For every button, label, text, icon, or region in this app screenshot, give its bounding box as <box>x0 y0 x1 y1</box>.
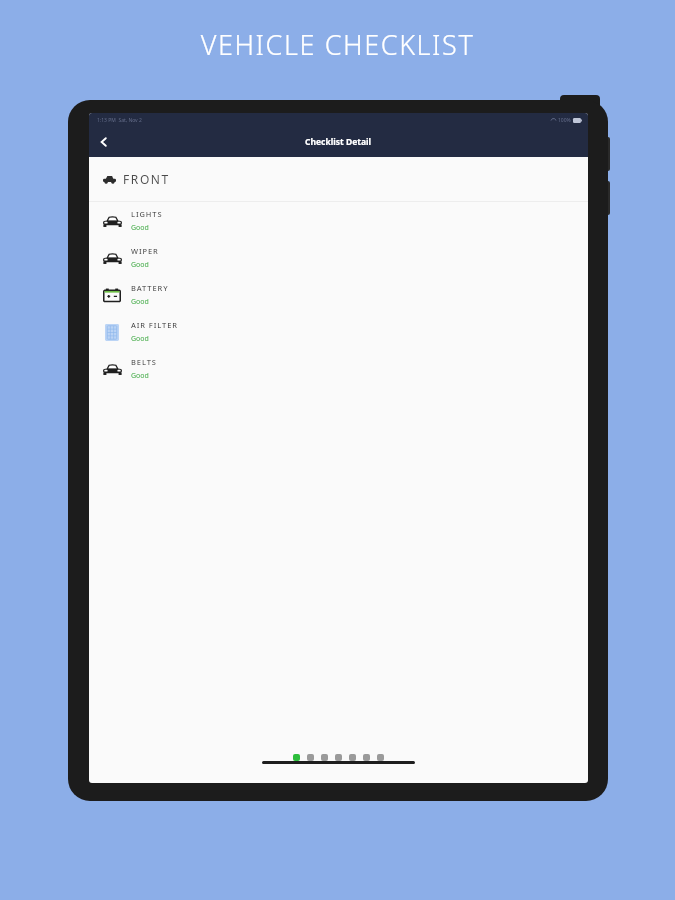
staticText: WIPER <box>131 246 159 256</box>
staticText: Good <box>131 334 149 344</box>
button[interactable]: Page 7 <box>377 754 384 761</box>
staticText: 1:13 PM Sat, Nov 2 <box>97 117 142 124</box>
button[interactable]: Page 2 <box>307 754 314 761</box>
button[interactable]: Page 4 <box>335 754 342 761</box>
staticText: VEHICLE CHECKLIST <box>0 26 675 63</box>
button[interactable]: AIR FILTER <box>89 313 588 350</box>
staticText: LIGHTS <box>131 209 163 219</box>
staticText: Good <box>131 223 149 233</box>
button[interactable]: WIPER <box>89 239 588 276</box>
staticText: BATTERY <box>131 283 169 293</box>
button[interactable]: Page 6 <box>363 754 370 761</box>
staticText: BELTS <box>131 357 157 367</box>
button[interactable]: Page 5 <box>349 754 356 761</box>
button[interactable]: Page 3 <box>321 754 328 761</box>
staticText: Good <box>131 371 149 381</box>
staticText: 100% <box>558 117 571 124</box>
staticText: FRONT <box>123 171 170 187</box>
staticText: Good <box>131 260 149 270</box>
staticText: AIR FILTER <box>131 320 178 330</box>
button[interactable]: Back <box>93 131 115 153</box>
staticText: Good <box>131 297 149 307</box>
button[interactable]: LIGHTS <box>89 202 588 239</box>
button[interactable]: Page 1 <box>293 754 300 761</box>
button[interactable]: BELTS <box>89 350 588 387</box>
button[interactable]: BATTERY <box>89 276 588 313</box>
staticText: Checklist Detail <box>305 136 372 148</box>
